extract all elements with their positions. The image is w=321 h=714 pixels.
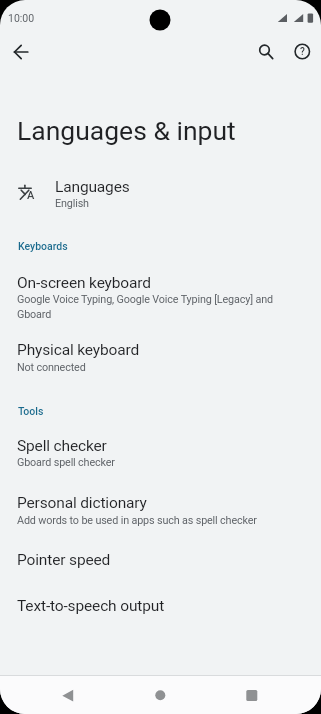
button[interactable]: On-screen keyboard: [0, 258, 321, 330]
staticText: 10:00: [8, 12, 35, 24]
button[interactable]: [8, 38, 36, 66]
staticText: Text-to-speech output: [17, 597, 165, 615]
button[interactable]: [147, 682, 173, 708]
button[interactable]: Pointer speed: [0, 536, 321, 584]
button[interactable]: A: [0, 166, 321, 220]
button[interactable]: Spell checker: [0, 424, 321, 480]
button[interactable]: Physical keyboard: [0, 330, 321, 386]
button[interactable]: Personal dictionary: [0, 480, 321, 536]
staticText: Languages: [55, 178, 130, 196]
staticText: Languages & input: [17, 115, 236, 146]
staticText: Tools: [18, 405, 44, 417]
staticText: Google Voice Typing, Google Voice Typing…: [17, 293, 273, 321]
staticText: Keyboards: [18, 240, 68, 252]
staticText: Add words to be used in apps such as spe…: [17, 514, 257, 527]
button[interactable]: [238, 682, 264, 708]
staticText: Personal dictionary: [17, 494, 147, 512]
staticText: A: [27, 189, 35, 202]
button[interactable]: ?: [288, 38, 316, 66]
staticText: On-screen keyboard: [17, 274, 151, 292]
staticText: Not connected: [17, 361, 86, 374]
button[interactable]: [251, 38, 279, 66]
button[interactable]: [54, 682, 80, 708]
staticText: ?: [300, 46, 305, 58]
staticText: Pointer speed: [17, 551, 111, 569]
staticText: Physical keyboard: [17, 341, 140, 359]
button[interactable]: Text-to-speech output: [0, 584, 321, 632]
staticText: Gboard spell checker: [17, 456, 115, 469]
staticText: English: [55, 197, 89, 210]
staticText: Spell checker: [17, 437, 107, 455]
